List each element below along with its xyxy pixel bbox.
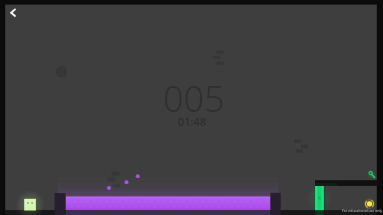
staticText: For educational use only (342, 208, 383, 213)
staticText: 01:48 (178, 114, 207, 129)
button[interactable]: Back (0, 0, 26, 26)
staticText: 005 (163, 74, 225, 123)
